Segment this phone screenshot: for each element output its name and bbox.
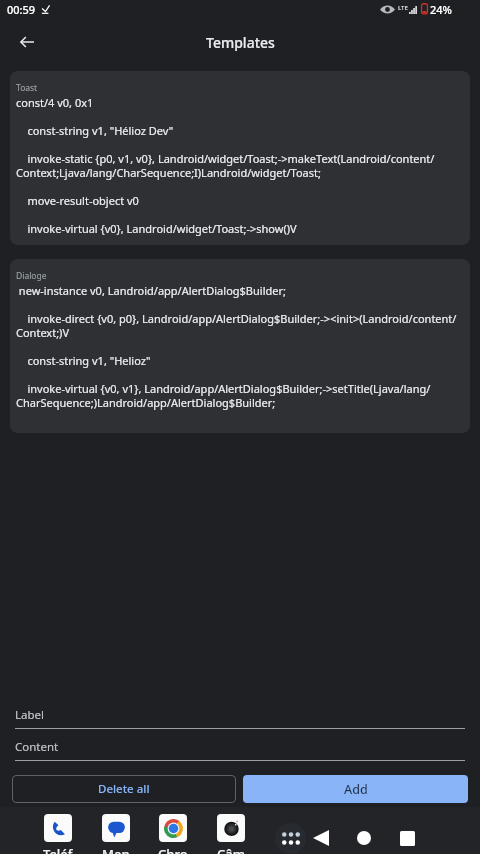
staticText: 24% bbox=[430, 2, 452, 17]
staticText: const/4 v0, 0x1 const-string v1, "Hélioz… bbox=[16, 95, 464, 236]
staticText: 00:59 bbox=[7, 2, 36, 17]
button[interactable]: Home bbox=[350, 824, 378, 852]
button[interactable]: Phone bbox=[44, 814, 72, 842]
button[interactable]: Back bbox=[8, 24, 46, 60]
button[interactable]: Delete all bbox=[12, 775, 236, 803]
staticText: new-instance v0, Landroid/app/AlertDialo… bbox=[16, 283, 464, 424]
staticText: Teléf bbox=[43, 845, 73, 854]
staticText: Templates bbox=[206, 33, 275, 52]
button[interactable]: Back bbox=[307, 824, 335, 852]
button[interactable]: Label bbox=[15, 707, 465, 729]
staticText: Men bbox=[102, 845, 130, 854]
button[interactable]: Dialoge bbox=[10, 259, 470, 433]
button[interactable]: Toast bbox=[10, 71, 470, 245]
button[interactable]: Messages bbox=[102, 814, 130, 842]
button[interactable]: Recents bbox=[393, 824, 421, 852]
staticText: Dialoge bbox=[16, 270, 47, 282]
staticText: Câm bbox=[217, 845, 246, 854]
staticText: Chro bbox=[158, 845, 188, 854]
button[interactable]: Camera bbox=[217, 814, 245, 842]
button[interactable]: Content bbox=[15, 739, 465, 761]
button[interactable]: All apps bbox=[275, 823, 306, 854]
staticText: Content bbox=[15, 739, 59, 755]
staticText: Delete all bbox=[98, 781, 150, 797]
staticText: Label bbox=[15, 707, 45, 723]
button[interactable]: Chrome bbox=[159, 814, 187, 842]
staticText: Add bbox=[344, 781, 368, 798]
button[interactable]: Add bbox=[243, 775, 468, 803]
staticText: Toast bbox=[16, 82, 38, 94]
staticText: LTE bbox=[398, 4, 408, 12]
